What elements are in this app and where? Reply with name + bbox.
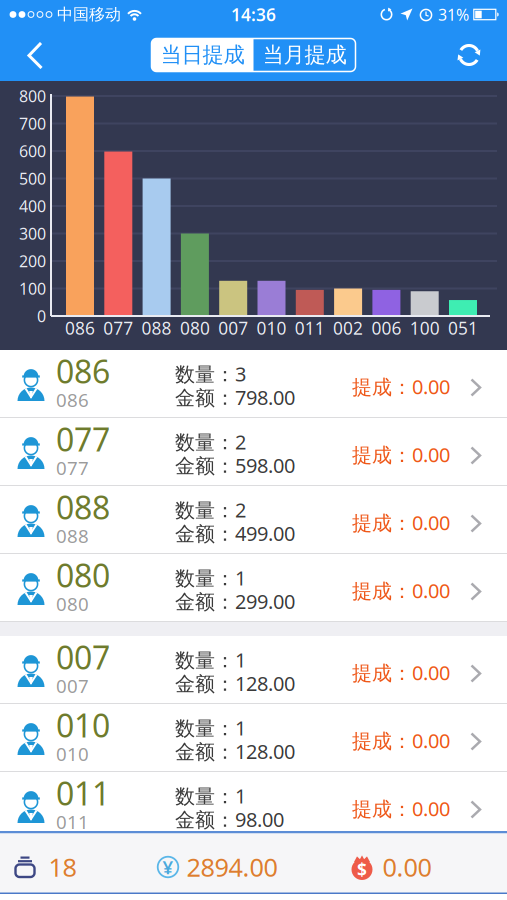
staticText: 金额：598.00 [175,452,295,479]
staticText: 077 [103,316,133,339]
staticText: 077 [56,455,89,480]
button[interactable]: Refresh [453,39,507,71]
staticText: 002 [333,316,363,339]
button[interactable]: 086 [0,350,507,418]
staticText: 010 [56,741,89,766]
staticText: 数量：2 [175,428,246,455]
staticText: 数量：1 [175,646,246,673]
button[interactable]: 金额 2894.00 [156,850,277,884]
staticText: 100 [410,316,440,339]
button[interactable]: 笔数 18 [13,850,76,884]
staticText: 数量：2 [175,496,246,523]
staticText: 086 [65,316,95,339]
staticText: 数量：1 [175,782,246,809]
button[interactable]: 080 [0,554,507,622]
staticText: 500 [19,168,46,189]
staticText: 010 [256,316,286,339]
staticText: 金额：128.00 [175,738,295,765]
staticText: 金额：299.00 [175,588,295,615]
staticText: 数量：1 [175,714,246,741]
staticText: 当日提成 [160,42,244,68]
staticText: 中国移动 [57,5,121,24]
button[interactable]: 当日提成 [151,38,253,71]
staticText: 007 [218,316,248,339]
staticText: $ [357,858,367,881]
button[interactable]: 077 [0,418,507,486]
staticText: 300 [19,223,46,244]
staticText: 提成：0.00 [352,373,450,400]
staticText: 当月提成 [262,42,346,68]
staticText: 011 [56,809,89,834]
button[interactable]: 088 [0,486,507,554]
staticText: 400 [19,195,46,217]
staticText: 200 [19,250,46,272]
staticText: 金额：798.00 [175,384,295,411]
staticText: 051 [448,316,478,339]
staticText: 2894.00 [186,850,277,884]
button[interactable]: 011 [0,772,507,840]
button[interactable]: 010 [0,704,507,772]
staticText: 金额：499.00 [175,520,295,547]
staticText: 金额：98.00 [175,806,284,833]
staticText: 18 [48,850,76,884]
staticText: 007 [56,636,110,678]
staticText: 提成：0.00 [352,795,450,822]
staticText: 提成：0.00 [352,659,450,686]
button[interactable]: 007 [0,636,507,704]
staticText: 100 [19,278,46,299]
staticText: 金额：128.00 [175,670,295,697]
staticText: 086 [56,387,89,412]
staticText: 080 [56,554,110,596]
staticText: 0.00 [382,850,431,884]
staticText: 提成：0.00 [352,509,450,536]
staticText: 077 [56,418,110,460]
staticText: 011 [56,772,110,814]
staticText: 007 [56,673,89,698]
staticText: 088 [56,486,110,528]
staticText: 14:36 [231,3,276,26]
staticText: 088 [56,523,89,548]
staticText: 31% [438,4,469,25]
staticText: 0 [37,305,46,327]
staticText: 提成：0.00 [352,441,450,468]
staticText: 080 [56,591,89,616]
staticText: 010 [56,704,110,746]
staticText: 080 [180,316,210,339]
staticText: 086 [56,350,110,392]
staticText: 700 [19,113,46,134]
staticText: 数量：3 [175,360,246,387]
staticText: 提成：0.00 [352,727,450,754]
staticText: 数量：1 [175,564,246,591]
staticText: 600 [19,140,46,162]
staticText: 800 [19,85,46,107]
staticText: ¥ [162,855,173,879]
staticText: 011 [295,316,325,339]
staticText: 提成：0.00 [352,577,450,604]
staticText: 088 [142,316,172,339]
button[interactable]: 提成 0.00 [348,850,431,884]
staticText: 006 [371,316,401,339]
button[interactable]: Back [0,29,52,81]
button[interactable]: 当月提成 [253,38,355,71]
